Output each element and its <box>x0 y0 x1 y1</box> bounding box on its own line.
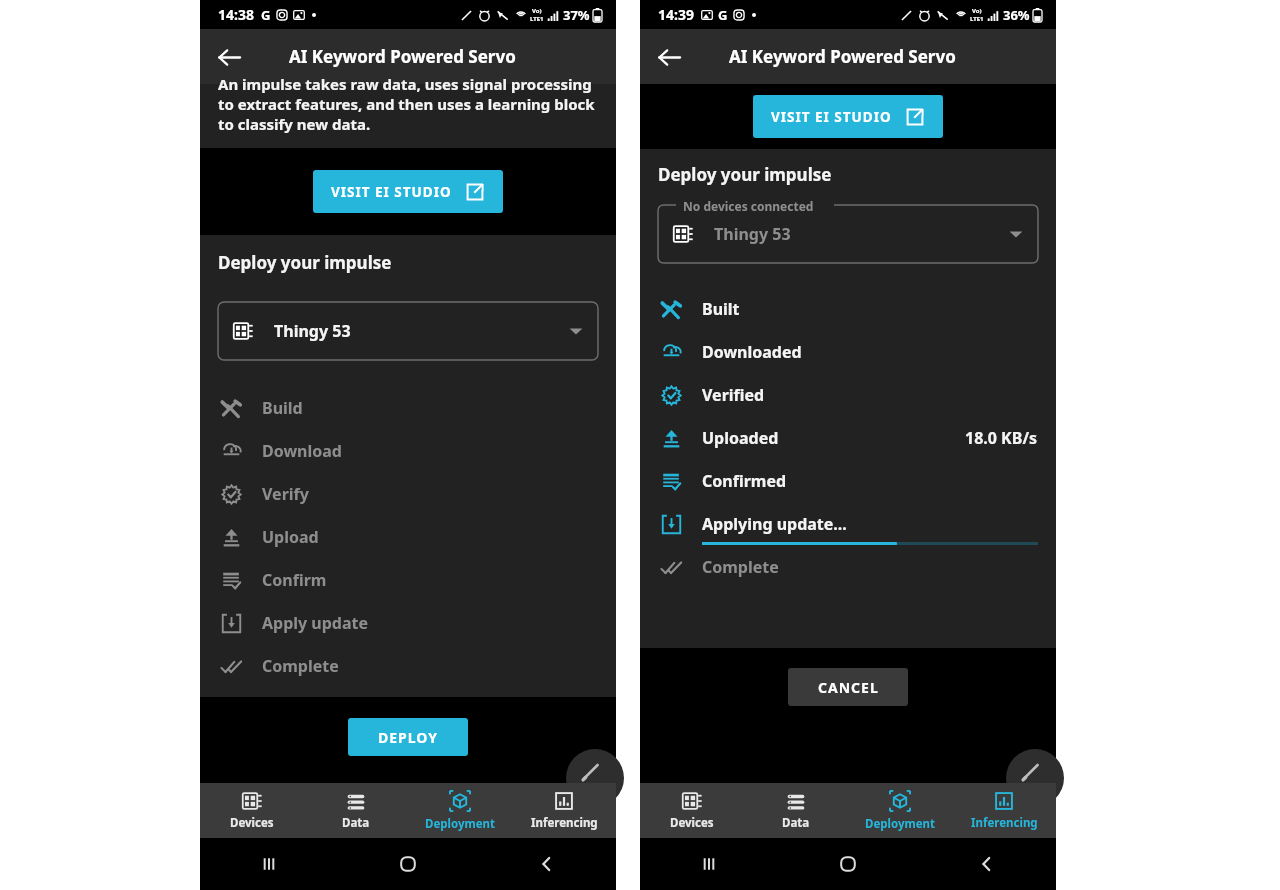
button[interactable]: Upload <box>200 515 616 558</box>
staticText: Thingy 53 <box>274 320 351 342</box>
staticText: Verified <box>702 384 765 406</box>
staticText: Devices <box>230 815 274 831</box>
button[interactable]: VISIT EI STUDIO <box>753 95 943 138</box>
staticText: G <box>718 6 728 24</box>
staticText: Data <box>342 815 370 831</box>
button[interactable]: Downloaded <box>640 330 1056 373</box>
button[interactable]: Build <box>200 386 616 429</box>
staticText: to classify new data. <box>218 114 371 134</box>
staticText: Devices <box>670 815 714 831</box>
button[interactable]: Deployment <box>408 783 512 838</box>
staticText: Deploy your impulse <box>658 163 832 186</box>
button[interactable]: Complete <box>640 545 1056 588</box>
button[interactable]: Confirmed <box>640 459 1056 502</box>
staticText: VISIT EI STUDIO <box>331 183 452 201</box>
button[interactable]: Download <box>200 429 616 472</box>
button[interactable]: Back <box>648 36 690 78</box>
button[interactable]: Devices <box>640 783 744 838</box>
button[interactable]: Applying update... <box>640 502 1056 545</box>
staticText: 37% <box>563 6 590 24</box>
staticText: Downloaded <box>702 341 802 363</box>
button[interactable]: Edit <box>1006 749 1064 807</box>
button[interactable]: Home <box>778 838 917 890</box>
staticText: Vo) <box>972 7 982 15</box>
button[interactable]: Inferencing <box>512 783 616 838</box>
button[interactable]: Recents <box>200 838 338 890</box>
staticText: LTE1 <box>530 15 544 23</box>
staticText: No devices connected <box>683 198 814 214</box>
button[interactable]: Back <box>208 36 250 78</box>
staticText: Uploaded <box>702 427 779 449</box>
staticText: to extract features, and then uses a lea… <box>218 94 595 114</box>
button[interactable]: Devices <box>200 783 304 838</box>
button[interactable]: Confirm <box>200 558 616 601</box>
staticText: Verify <box>262 483 309 505</box>
button[interactable]: Deployment <box>848 783 952 838</box>
staticText: Data <box>782 815 810 831</box>
staticText: Built <box>702 298 740 320</box>
staticText: 36% <box>1003 6 1030 24</box>
staticText: 14:38 <box>218 5 254 24</box>
staticText: An impulse takes raw data, uses signal p… <box>218 74 592 94</box>
button[interactable]: VISIT EI STUDIO <box>313 170 503 213</box>
button[interactable]: Complete <box>200 644 616 687</box>
staticText: CANCEL <box>818 678 879 697</box>
staticText: Confirm <box>262 569 327 591</box>
staticText: Upload <box>262 526 319 548</box>
staticText: 14:39 <box>658 5 694 24</box>
button[interactable]: Home <box>338 838 477 890</box>
staticText: Complete <box>702 556 779 578</box>
staticText: VISIT EI STUDIO <box>771 108 892 126</box>
staticText: Build <box>262 397 303 419</box>
button[interactable]: Recents <box>640 838 778 890</box>
staticText: Apply update <box>262 612 369 634</box>
button[interactable]: Select device <box>658 205 1038 263</box>
button[interactable]: Select device <box>218 302 598 360</box>
staticText: Deployment <box>865 816 936 832</box>
staticText: Complete <box>262 655 339 677</box>
staticText: AI Keyword Powered Servo <box>729 45 956 68</box>
button[interactable]: Back <box>477 838 616 890</box>
button[interactable]: Built <box>640 287 1056 330</box>
button[interactable]: Inferencing <box>952 783 1056 838</box>
button[interactable]: CANCEL <box>788 668 908 706</box>
staticText: Confirmed <box>702 470 787 492</box>
button[interactable]: Data <box>304 783 408 838</box>
staticText: Thingy 53 <box>714 223 791 245</box>
staticText: Inferencing <box>971 815 1038 831</box>
staticText: LTE1 <box>970 15 984 23</box>
button[interactable]: Verified <box>640 373 1056 416</box>
staticText: Deploy your impulse <box>218 251 392 274</box>
staticText: Inferencing <box>531 815 598 831</box>
staticText: 18.0 KB/s <box>965 427 1038 449</box>
button[interactable]: Uploaded <box>640 416 1056 459</box>
staticText: G <box>261 6 271 24</box>
staticText: Vo) <box>532 7 542 15</box>
staticText: DEPLOY <box>378 728 439 747</box>
staticText: Download <box>262 440 342 462</box>
button[interactable]: Back <box>917 838 1056 890</box>
staticText: AI Keyword Powered Servo <box>289 45 516 68</box>
button[interactable]: DEPLOY <box>348 718 468 756</box>
staticText: Applying update... <box>702 513 847 535</box>
button[interactable]: Verify <box>200 472 616 515</box>
staticText: Deployment <box>425 816 496 832</box>
button[interactable]: Apply update <box>200 601 616 644</box>
button[interactable]: Data <box>744 783 848 838</box>
button[interactable]: Edit <box>566 749 624 807</box>
